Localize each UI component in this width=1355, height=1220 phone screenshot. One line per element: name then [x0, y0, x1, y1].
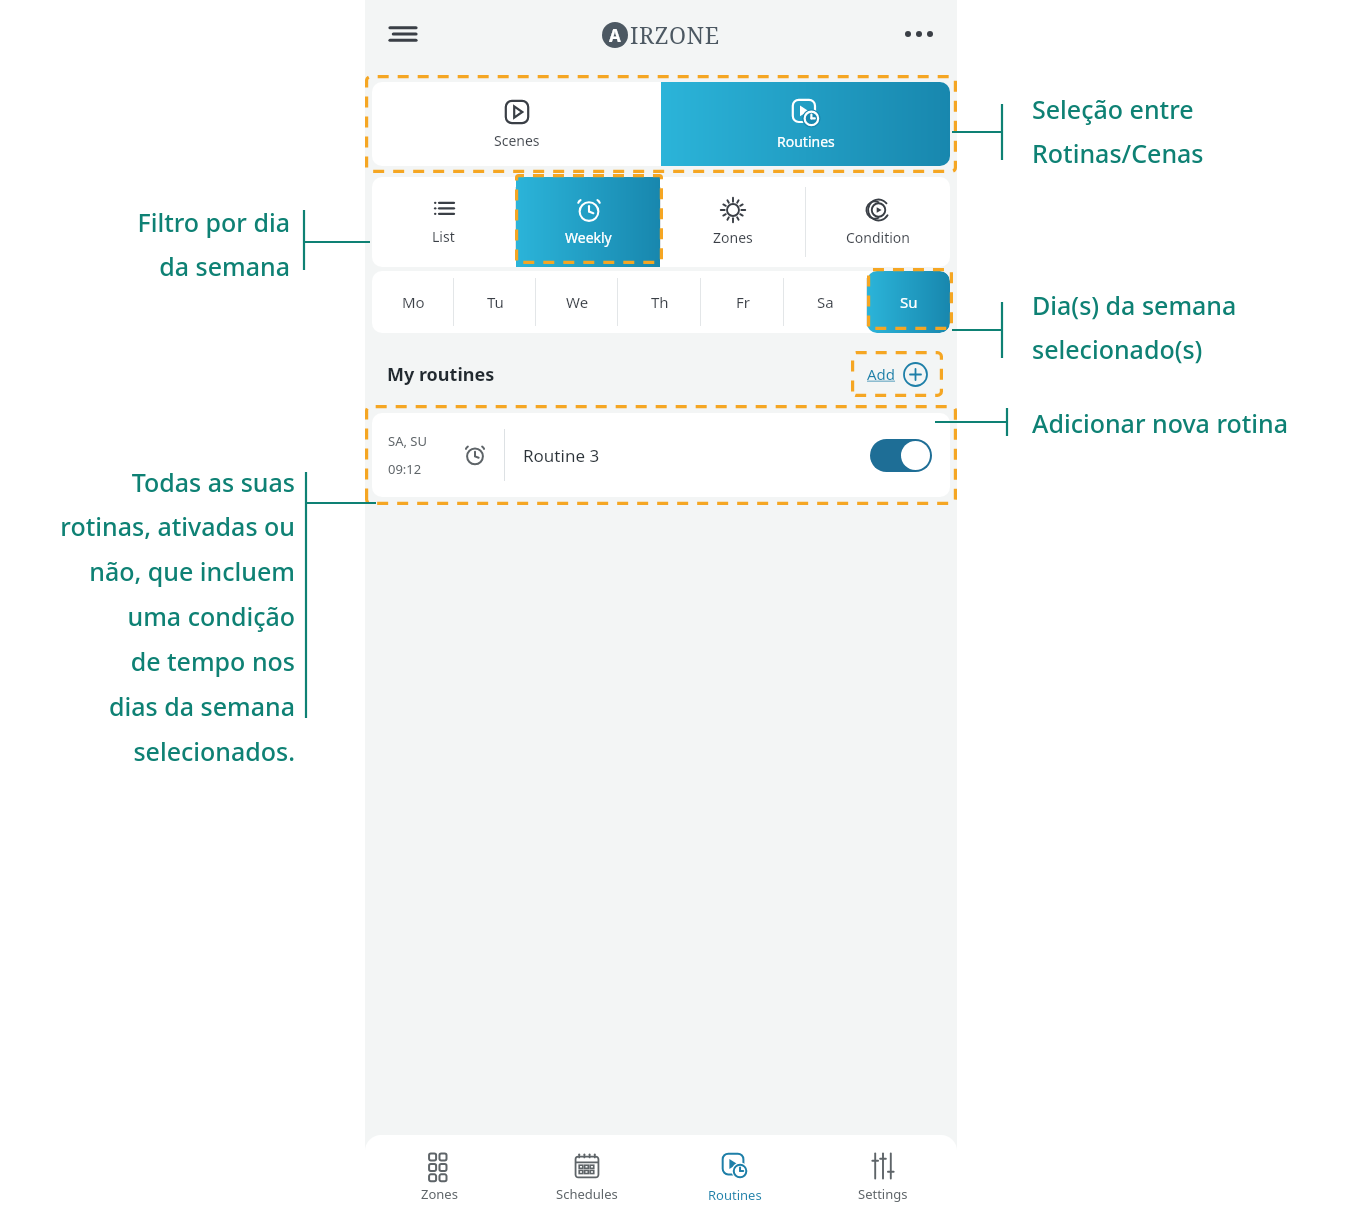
- staticText: Sa: [817, 292, 834, 312]
- staticText: A: [609, 24, 621, 47]
- button[interactable]: Th: [618, 271, 701, 333]
- button[interactable]: SA, SU: [372, 413, 950, 497]
- staticText: My routines: [387, 362, 495, 387]
- button[interactable]: Zones: [661, 177, 805, 267]
- button[interactable]: Schedules: [513, 1135, 661, 1220]
- staticText: Tu: [487, 292, 504, 312]
- button[interactable]: Weekly: [516, 177, 660, 267]
- staticText: Condition: [846, 228, 910, 247]
- staticText: Dia(s) da semana selecionado(s): [1032, 288, 1352, 366]
- button[interactable]: Routine 3 enabled: [870, 439, 932, 472]
- staticText: List: [432, 227, 455, 246]
- button[interactable]: Routines: [661, 82, 950, 166]
- staticText: Fr: [736, 292, 750, 312]
- button[interactable]: Routines: [661, 1135, 809, 1220]
- staticText: Routine 3: [523, 444, 870, 467]
- staticText: IRZONE: [630, 19, 720, 50]
- staticText: 09:12: [388, 460, 422, 478]
- staticText: Weekly: [565, 228, 612, 247]
- staticText: Scenes: [494, 131, 540, 150]
- staticText: Zones: [421, 1185, 458, 1203]
- button[interactable]: List: [372, 177, 515, 267]
- button[interactable]: Fr: [701, 271, 784, 333]
- staticText: We: [566, 292, 589, 312]
- staticText: Routines: [777, 132, 835, 151]
- staticText: Todas as suas rotinas, ativadas ou não, …: [10, 465, 295, 768]
- button[interactable]: Add: [857, 351, 937, 397]
- button[interactable]: We: [536, 271, 618, 333]
- staticText: Settings: [858, 1185, 908, 1203]
- staticText: Seleção entre Rotinas/Cenas: [1032, 92, 1352, 170]
- button[interactable]: Condition: [806, 177, 950, 267]
- button[interactable]: Scenes: [372, 82, 661, 166]
- staticText: SA, SU: [388, 432, 427, 450]
- button[interactable]: Menu: [383, 14, 423, 54]
- staticText: Zones: [713, 228, 753, 247]
- button[interactable]: Tu: [454, 271, 536, 333]
- button[interactable]: Settings: [809, 1135, 957, 1220]
- staticText: Filtro por dia da semana: [40, 205, 290, 283]
- button[interactable]: Su: [867, 271, 950, 333]
- staticText: Mo: [402, 292, 425, 312]
- button[interactable]: Zones: [365, 1135, 513, 1220]
- staticText: Su: [900, 292, 918, 312]
- staticText: Add: [867, 364, 896, 384]
- staticText: Adicionar nova rotina: [1032, 406, 1355, 440]
- button[interactable]: More options: [897, 12, 941, 56]
- staticText: Routines: [708, 1186, 762, 1204]
- button[interactable]: Sa: [784, 271, 867, 333]
- button[interactable]: Mo: [372, 271, 454, 333]
- staticText: Schedules: [556, 1185, 618, 1203]
- staticText: Th: [651, 292, 669, 312]
